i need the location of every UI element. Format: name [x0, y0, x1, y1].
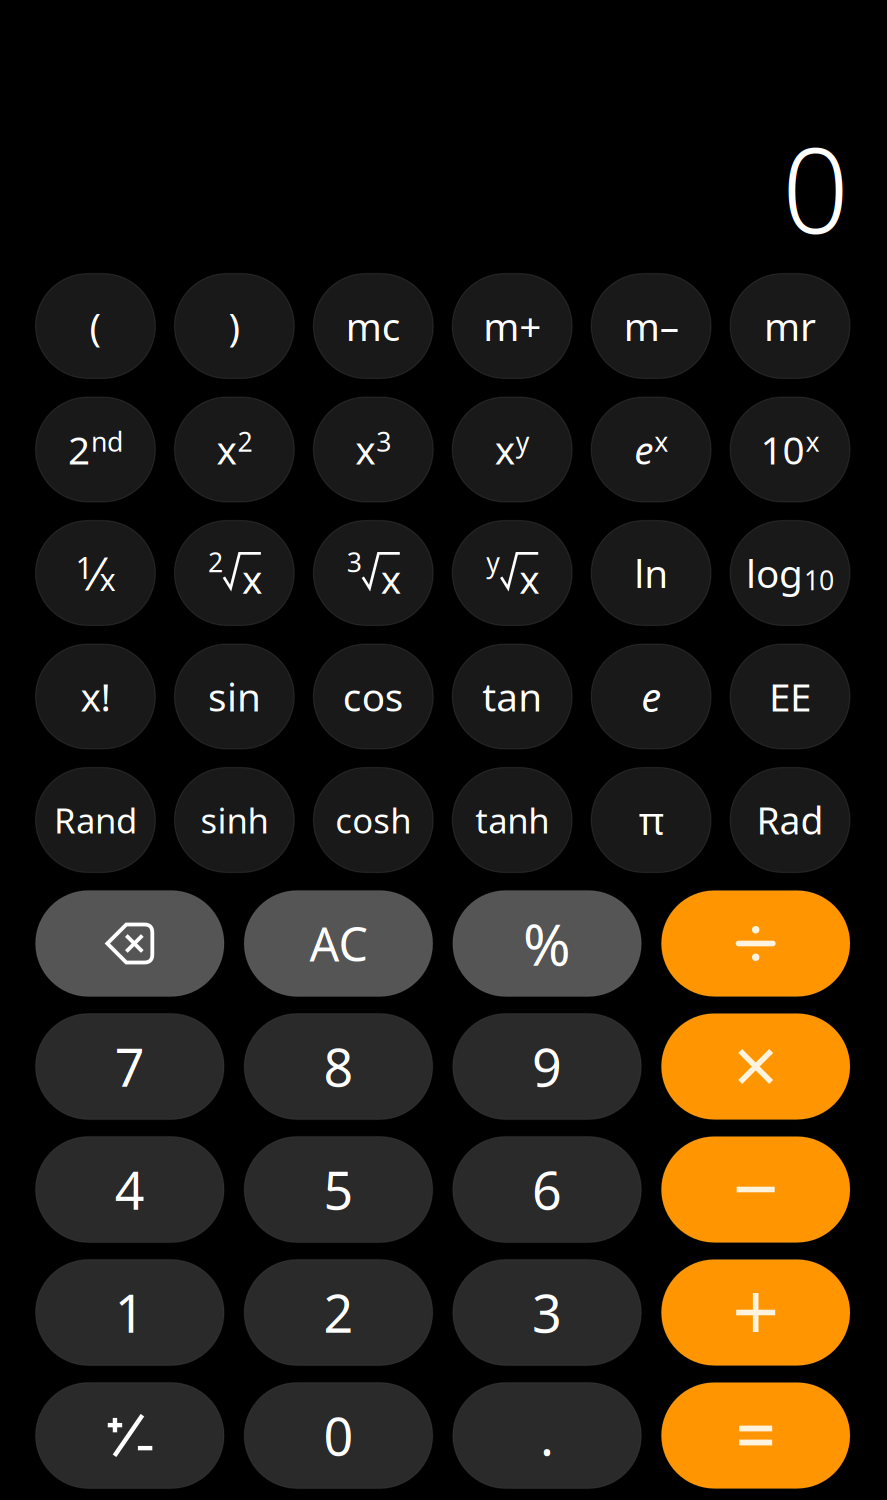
- staticText: ): [228, 300, 240, 352]
- button[interactable]: sinh: [174, 767, 294, 872]
- staticText: sin: [208, 671, 261, 722]
- staticText: 1: [75, 547, 93, 587]
- staticText: %: [523, 905, 571, 981]
- button[interactable]: 2: [174, 520, 294, 625]
- staticText: cos: [343, 671, 404, 722]
- button[interactable]: 7: [35, 1013, 224, 1119]
- button[interactable]: ): [174, 273, 294, 378]
- staticText: 10: [760, 424, 804, 475]
- button[interactable]: 5: [244, 1136, 433, 1242]
- staticText: sinh: [200, 797, 268, 843]
- button[interactable]: π: [591, 767, 711, 872]
- button[interactable]: 2: [244, 1259, 433, 1365]
- staticText: EE: [769, 671, 811, 722]
- button[interactable]: Rand: [35, 767, 155, 872]
- staticText: 3: [347, 544, 362, 580]
- staticText: Rad: [756, 795, 823, 845]
- button[interactable]: mc: [313, 273, 433, 378]
- staticText: π: [639, 794, 664, 846]
- staticText: mr: [764, 300, 816, 352]
- button[interactable]: Equals: [661, 1382, 850, 1488]
- staticText: x: [99, 559, 115, 599]
- staticText: log: [746, 547, 803, 599]
- button[interactable]: 9: [453, 1013, 641, 1119]
- button[interactable]: 0: [244, 1382, 433, 1488]
- button[interactable]: AC: [244, 890, 433, 996]
- staticText: 6: [532, 1155, 562, 1224]
- button[interactable]: cos: [313, 644, 433, 749]
- staticText: mc: [346, 300, 401, 352]
- button[interactable]: y: [452, 520, 572, 625]
- staticText: x!: [80, 671, 110, 722]
- staticText: Rand: [54, 797, 137, 843]
- button[interactable]: 6: [453, 1136, 641, 1242]
- staticText: 2: [323, 1278, 353, 1347]
- staticText: 2: [237, 424, 252, 459]
- button[interactable]: tan: [452, 644, 572, 749]
- button[interactable]: sin: [174, 644, 294, 749]
- staticText: e: [641, 670, 661, 723]
- button[interactable]: %: [453, 890, 641, 996]
- button[interactable]: ln: [591, 520, 711, 625]
- button[interactable]: Subtract: [661, 1136, 850, 1242]
- button[interactable]: Divide: [661, 890, 850, 996]
- button[interactable]: Plus Minus: [35, 1382, 224, 1488]
- button[interactable]: Add: [661, 1259, 850, 1365]
- button[interactable]: m+: [452, 273, 572, 378]
- staticText: x: [355, 424, 375, 475]
- staticText: 8: [323, 1032, 353, 1101]
- staticText: AC: [309, 912, 367, 974]
- button[interactable]: x: [313, 397, 433, 502]
- staticText: 9: [532, 1032, 562, 1101]
- button[interactable]: mr: [730, 273, 850, 378]
- button[interactable]: (: [35, 273, 155, 378]
- button[interactable]: m–: [591, 273, 711, 378]
- staticText: ln: [634, 547, 668, 599]
- button[interactable]: 1: [35, 1259, 224, 1365]
- button[interactable]: 8: [244, 1013, 433, 1119]
- staticText: 2: [208, 544, 223, 580]
- button[interactable]: 3: [453, 1259, 641, 1365]
- button[interactable]: 4: [35, 1136, 224, 1242]
- button[interactable]: log: [730, 520, 850, 625]
- button[interactable]: e: [591, 397, 711, 502]
- button[interactable]: x!: [35, 644, 155, 749]
- staticText: x: [216, 424, 236, 475]
- button[interactable]: 3: [313, 520, 433, 625]
- staticText: 7: [115, 1032, 145, 1101]
- staticText: .: [540, 1401, 554, 1470]
- button[interactable]: Delete: [35, 890, 224, 996]
- button[interactable]: Rad: [730, 767, 850, 872]
- button[interactable]: x: [452, 397, 572, 502]
- staticText: 0: [782, 110, 849, 266]
- button[interactable]: cosh: [313, 767, 433, 872]
- staticText: 0: [323, 1401, 353, 1470]
- button[interactable]: 2: [35, 397, 155, 502]
- button[interactable]: 1: [35, 520, 155, 625]
- staticText: ⁄: [93, 543, 99, 603]
- staticText: 1: [115, 1278, 145, 1347]
- button[interactable]: Multiply: [661, 1013, 850, 1119]
- staticText: (: [89, 300, 101, 352]
- staticText: 5: [323, 1155, 353, 1224]
- staticText: 3: [376, 424, 391, 459]
- staticText: m+: [483, 300, 541, 352]
- button[interactable]: EE: [730, 644, 850, 749]
- button[interactable]: x: [174, 397, 294, 502]
- button[interactable]: e: [591, 644, 711, 749]
- staticText: x: [495, 424, 515, 475]
- button[interactable]: tanh: [452, 767, 572, 872]
- staticText: 10: [804, 562, 834, 598]
- staticText: tan: [482, 671, 542, 722]
- button[interactable]: 10: [730, 397, 850, 502]
- staticText: y: [486, 544, 500, 580]
- staticText: 3: [532, 1278, 562, 1347]
- button[interactable]: .: [453, 1382, 641, 1488]
- staticText: nd: [91, 424, 123, 459]
- staticText: m–: [624, 300, 679, 352]
- staticText: tanh: [475, 797, 549, 843]
- staticText: y: [516, 424, 530, 459]
- staticText: x: [381, 553, 401, 604]
- staticText: x: [242, 553, 262, 604]
- staticText: x: [519, 553, 539, 604]
